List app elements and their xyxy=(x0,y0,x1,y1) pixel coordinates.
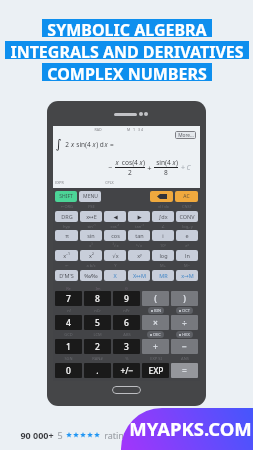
staticText: ∫dx xyxy=(158,213,168,220)
button[interactable]: SHIFT xyxy=(55,191,77,202)
button[interactable]: 6 xyxy=(113,315,140,330)
staticText: × xyxy=(153,317,158,329)
button[interactable]: + xyxy=(142,339,169,354)
button[interactable]: π xyxy=(55,230,78,241)
staticText: 1 xyxy=(66,341,71,353)
button[interactable]: +/− xyxy=(113,363,140,378)
staticText: ÷ xyxy=(182,317,187,329)
button[interactable]: x→M xyxy=(176,270,198,281)
button[interactable]: D'M'S xyxy=(55,270,78,281)
button[interactable]: DRG xyxy=(55,211,78,222)
button[interactable]: − xyxy=(171,339,198,354)
staticText: x xyxy=(92,140,96,149)
button[interactable]: ◀ xyxy=(104,211,126,222)
button[interactable]: 4 xyxy=(55,315,82,330)
staticText: X↔M xyxy=(133,272,146,279)
staticText: log xyxy=(159,252,168,259)
staticText: CPLX xyxy=(105,180,114,185)
button[interactable]: 8 xyxy=(84,291,111,306)
button[interactable]: ∫dx xyxy=(152,211,174,222)
staticText: . xyxy=(96,365,99,377)
button[interactable]: tan xyxy=(128,230,150,241)
button[interactable]: MR xyxy=(152,270,174,281)
button[interactable]: MYAPKS.COM xyxy=(121,408,253,450)
staticText: ∠ xyxy=(161,224,165,229)
staticText: √x xyxy=(112,252,119,259)
staticText: n! xyxy=(67,308,71,313)
staticText: eˣ xyxy=(185,243,189,248)
button[interactable]: 2 xyxy=(84,339,111,354)
button[interactable]: ÷ xyxy=(171,315,198,330)
button[interactable]: 7 xyxy=(55,291,82,306)
button[interactable]: 5 xyxy=(84,315,111,330)
staticText: − xyxy=(108,163,113,173)
button[interactable]: log xyxy=(152,250,174,261)
button[interactable]: i xyxy=(152,230,174,241)
staticText: hyp xyxy=(63,224,70,229)
button[interactable]: X↔M xyxy=(128,270,150,281)
staticText: FSE xyxy=(88,204,95,209)
staticText: + xyxy=(153,341,158,353)
button[interactable]: . xyxy=(84,363,111,378)
staticText: % xyxy=(125,356,129,361)
button[interactable]: More... xyxy=(175,131,196,139)
staticText: x xyxy=(139,158,143,167)
button[interactable]: ‰⁄‰ xyxy=(80,270,102,281)
staticText: π xyxy=(65,232,69,239)
button[interactable]: MENU xyxy=(79,191,101,202)
staticText: x→M xyxy=(181,272,194,279)
staticText: sin(4 xyxy=(75,140,92,149)
staticText: Y xyxy=(114,263,117,268)
staticText: ← xyxy=(65,263,69,268)
button[interactable]: Backspace xyxy=(150,191,173,202)
button[interactable]: ) xyxy=(171,291,198,306)
button[interactable]: 3 xyxy=(113,339,140,354)
staticText: EXP SI xyxy=(150,356,162,361)
button[interactable]: ▶ xyxy=(128,211,150,222)
staticText: 7 xyxy=(66,293,71,305)
button[interactable]: ( xyxy=(142,291,169,306)
button[interactable]: cos xyxy=(104,230,126,241)
staticText: tan xyxy=(135,232,144,239)
staticText: ³√x xyxy=(112,243,119,248)
staticText: 0 xyxy=(66,365,71,377)
button[interactable]: CONV xyxy=(176,211,198,222)
staticText: C xyxy=(186,163,191,173)
staticText: +/− xyxy=(120,365,134,377)
staticText: ln xyxy=(185,252,190,259)
button[interactable]: e xyxy=(176,230,198,241)
staticText: X xyxy=(113,272,117,279)
staticText: EXPR xyxy=(55,180,64,185)
staticText: x xyxy=(172,158,176,167)
button[interactable]: x⁻¹ xyxy=(55,250,78,261)
button[interactable]: AC xyxy=(175,191,198,202)
staticText: sin xyxy=(87,232,95,239)
button[interactable]: ln xyxy=(176,250,198,261)
button[interactable]: √x xyxy=(104,250,126,261)
staticText: x xyxy=(104,140,108,149)
staticText: cos xyxy=(111,232,120,239)
button[interactable]: X xyxy=(104,270,126,281)
staticText: EXP xyxy=(148,365,164,377)
button[interactable]: 1 xyxy=(55,339,82,354)
staticText: cos⁻¹ xyxy=(110,224,120,229)
button[interactable]: x↔E xyxy=(80,211,102,222)
staticText: CNST xyxy=(182,204,192,209)
button[interactable]: EXP xyxy=(142,363,169,378)
staticText: ʸ√x xyxy=(136,243,142,248)
staticText: i xyxy=(162,232,164,239)
button[interactable]: = xyxy=(171,363,198,378)
staticText: MYAPKS.COM xyxy=(129,416,252,441)
staticText: a b/c xyxy=(86,263,96,268)
staticText: COMPLEX NUMBERS xyxy=(47,63,207,81)
button[interactable]: x² xyxy=(80,250,102,261)
button[interactable]: xʸ xyxy=(128,250,150,261)
staticText: INTEGRALS AND DERIVATIVES xyxy=(10,41,244,59)
button[interactable]: 0 xyxy=(55,363,82,378)
button[interactable]: × xyxy=(142,315,169,330)
button[interactable]: sin xyxy=(80,230,102,241)
staticText: More... xyxy=(178,132,194,139)
staticText: 2 xyxy=(95,341,100,353)
staticText: cos(4 xyxy=(119,158,139,167)
button[interactable]: 9 xyxy=(113,291,140,306)
